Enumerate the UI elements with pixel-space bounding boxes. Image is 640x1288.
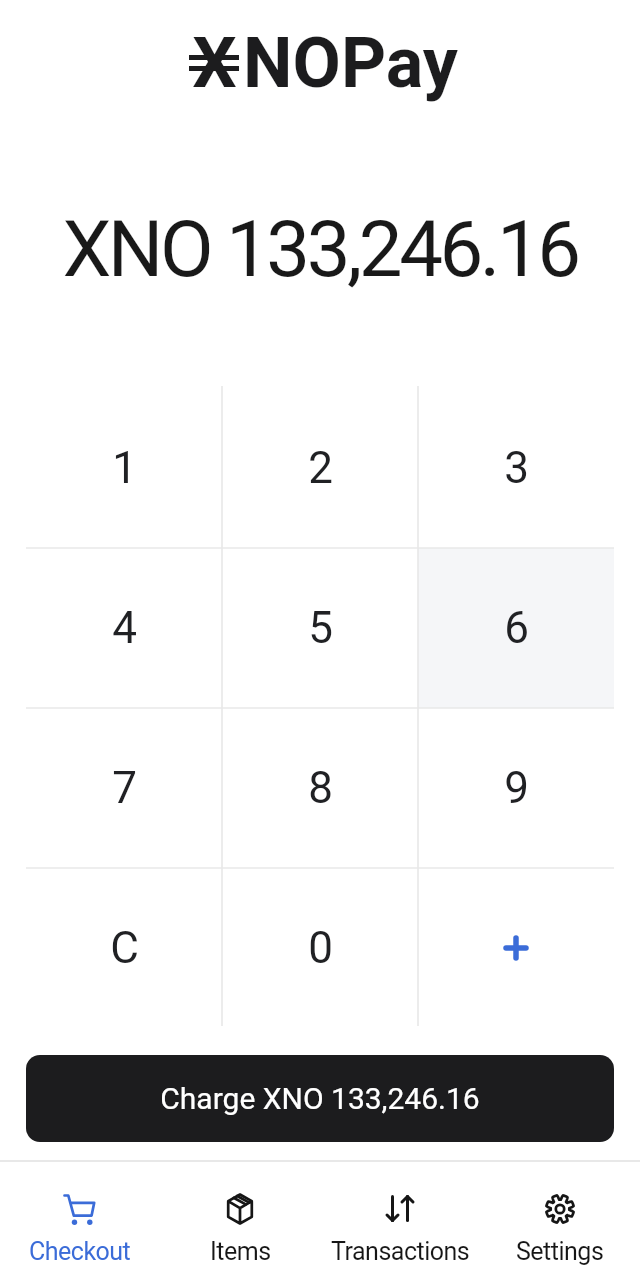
- button[interactable]: 6: [418, 548, 614, 708]
- staticText: XNO 133,246.16: [62, 204, 578, 295]
- button[interactable]: [418, 868, 614, 1028]
- button[interactable]: Settings: [480, 1162, 640, 1288]
- button[interactable]: 4: [26, 548, 222, 708]
- button[interactable]: Checkout: [0, 1162, 160, 1288]
- staticText: Checkout: [29, 1237, 131, 1266]
- button[interactable]: 9: [418, 708, 614, 868]
- button[interactable]: 8: [222, 708, 418, 868]
- staticText: 6: [504, 602, 529, 654]
- button[interactable]: C: [26, 868, 222, 1028]
- staticText: 4: [112, 602, 137, 654]
- button[interactable]: Items: [160, 1162, 320, 1288]
- button[interactable]: 5: [222, 548, 418, 708]
- staticText: Settings: [516, 1237, 604, 1266]
- staticText: 9: [504, 762, 529, 814]
- staticText: Charge XNO 133,246.16: [160, 1081, 480, 1116]
- staticText: 5: [308, 602, 333, 654]
- button[interactable]: 0: [222, 868, 418, 1028]
- button[interactable]: 1: [26, 388, 222, 548]
- staticText: Transactions: [331, 1237, 470, 1266]
- staticText: 2: [308, 442, 333, 494]
- button[interactable]: 3: [418, 388, 614, 548]
- staticText: X: [192, 22, 237, 104]
- button[interactable]: 7: [26, 708, 222, 868]
- button[interactable]: Transactions: [320, 1162, 480, 1288]
- staticText: 3: [504, 442, 529, 494]
- staticText: NOPay: [243, 22, 458, 104]
- staticText: Items: [210, 1237, 271, 1266]
- staticText: 8: [308, 762, 333, 814]
- staticText: 1: [112, 442, 137, 494]
- staticText: C: [110, 922, 139, 974]
- staticText: 0: [308, 922, 333, 974]
- staticText: 7: [112, 762, 137, 814]
- button[interactable]: Charge XNO 133,246.16: [26, 1055, 614, 1142]
- button[interactable]: 2: [222, 388, 418, 548]
